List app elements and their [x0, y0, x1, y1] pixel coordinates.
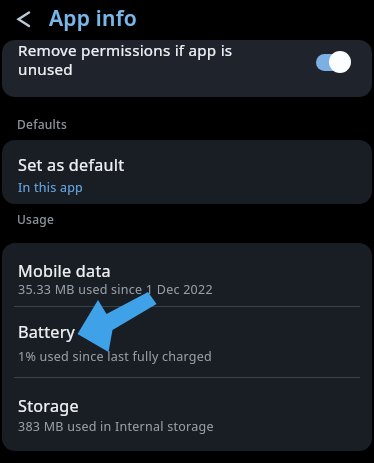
button[interactable]: Battery — [2, 307, 372, 377]
staticText: Defaults — [17, 116, 68, 132]
staticText: 1% used since last fully charged — [18, 348, 213, 365]
button[interactable]: Remove permissions if app is unused — [2, 40, 372, 97]
button[interactable]: Storage — [2, 378, 372, 451]
staticText: Mobile data — [18, 260, 111, 282]
staticText: 383 MB used in Internal storage — [18, 418, 214, 435]
staticText: 35.33 MB used since 1 Dec 2022 — [18, 281, 213, 298]
staticText: Remove permissions if app is unused — [18, 40, 233, 79]
staticText: Set as default — [18, 154, 125, 176]
button[interactable]: Set as default — [2, 140, 372, 204]
button[interactable]: Mobile data — [2, 243, 372, 306]
staticText: Battery — [18, 321, 76, 343]
button[interactable] — [8, 6, 44, 34]
staticText: Usage — [17, 211, 55, 227]
staticText: Storage — [18, 395, 79, 417]
staticText: In this app — [18, 179, 84, 196]
staticText: App info — [49, 4, 137, 33]
